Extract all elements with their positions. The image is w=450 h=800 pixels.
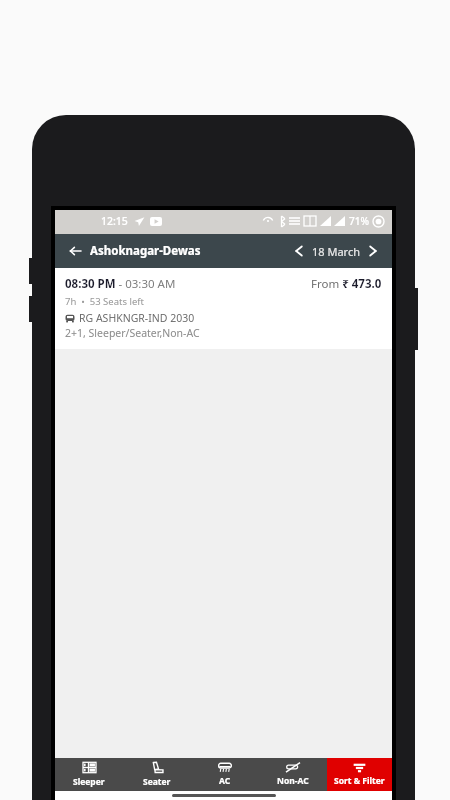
button[interactable]: 18 March [312, 244, 360, 259]
button[interactable]: 08:30 PM - 03:30 AM [55, 268, 392, 349]
button[interactable]: Previous day [290, 242, 308, 260]
button[interactable]: Seater [123, 758, 191, 791]
button[interactable]: Next day [364, 242, 382, 260]
staticText: Sleeper [73, 776, 105, 788]
staticText: From ₹ 473.0 [311, 276, 382, 292]
button[interactable]: Sleeper [55, 758, 123, 791]
staticText: 7h • 53 Seats left [65, 295, 144, 308]
staticText: RG ASHKNGR-IND 2030 [79, 311, 195, 325]
staticText: 71% [349, 214, 369, 228]
staticText: 08:30 PM - 03:30 AM [65, 276, 176, 292]
staticText: 18 March [312, 244, 360, 259]
staticText: Ashoknagar-Dewas [90, 243, 201, 259]
button[interactable]: AC [191, 758, 259, 791]
staticText: Seater [143, 776, 171, 788]
staticText: 12:15 [101, 214, 128, 228]
staticText: 2+1, Sleeper/Seater,Non-AC [65, 326, 200, 340]
staticText: Sort & Filter [334, 775, 385, 787]
button[interactable]: Non-AC [259, 758, 327, 791]
button[interactable]: Back [65, 241, 85, 261]
staticText: AC [219, 775, 231, 787]
staticText: Non-AC [277, 775, 309, 787]
button[interactable]: Sort & Filter [327, 758, 392, 791]
